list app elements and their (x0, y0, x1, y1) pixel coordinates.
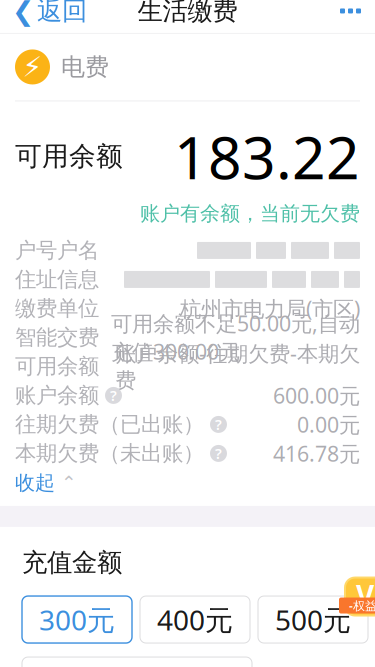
staticText: ⚡︎ (22, 51, 42, 83)
staticText: 183.22 (174, 117, 360, 195)
button[interactable]: 500元 (258, 596, 368, 643)
button[interactable]: 300元 (22, 596, 132, 643)
staticText: 杭州市电力局(市区) (180, 294, 360, 323)
button[interactable]: 自定义金额 (22, 657, 252, 667)
staticText: 400元 (157, 601, 233, 638)
staticText: 可用余额 (15, 140, 123, 173)
staticText: 账户余额 (15, 382, 99, 408)
staticText: 充值金额 (22, 547, 122, 578)
staticText: 600.00元 (273, 381, 360, 410)
button[interactable]: More options (326, 0, 375, 33)
button[interactable]: ⚡︎ (0, 33, 375, 100)
button[interactable]: ❮ (0, 0, 99, 33)
staticText: 416.78元 (273, 439, 360, 468)
staticText: V (356, 576, 374, 614)
button[interactable]: 400元 (140, 596, 250, 643)
staticText: ⌃ (61, 472, 77, 493)
staticText: ? (215, 444, 222, 463)
staticText: 返回 (37, 0, 87, 26)
staticText: 缴费单位 (15, 295, 99, 321)
staticText: -权益- (349, 598, 375, 613)
staticText: 本期欠费（未出账） (15, 440, 204, 466)
staticText: 0.00元 (297, 410, 360, 439)
staticText: 500元 (275, 601, 351, 638)
staticText: 可用余额 (15, 353, 99, 379)
staticText: 300元 (39, 601, 115, 638)
staticText: 户号户名 (15, 237, 99, 263)
staticText: 住址信息 (15, 266, 99, 292)
staticText: 可用余额不足50.00元,自动充值300.00元 (111, 309, 360, 366)
staticText: 生活缴费 (137, 0, 237, 26)
staticText: ? (215, 415, 222, 434)
staticText: 智能交费 (15, 324, 99, 350)
staticText: ? (110, 386, 117, 405)
staticText: 收起 (15, 471, 55, 495)
staticText: ❮ (12, 0, 34, 26)
staticText: 往期欠费（已出账） (15, 411, 204, 437)
staticText: 电费 (61, 52, 109, 82)
staticText: 账户有余额，当前无欠费 (140, 201, 360, 226)
button[interactable]: 收起 (0, 468, 375, 498)
staticText: 账户余额-往期欠费-本期欠费 (115, 339, 360, 394)
